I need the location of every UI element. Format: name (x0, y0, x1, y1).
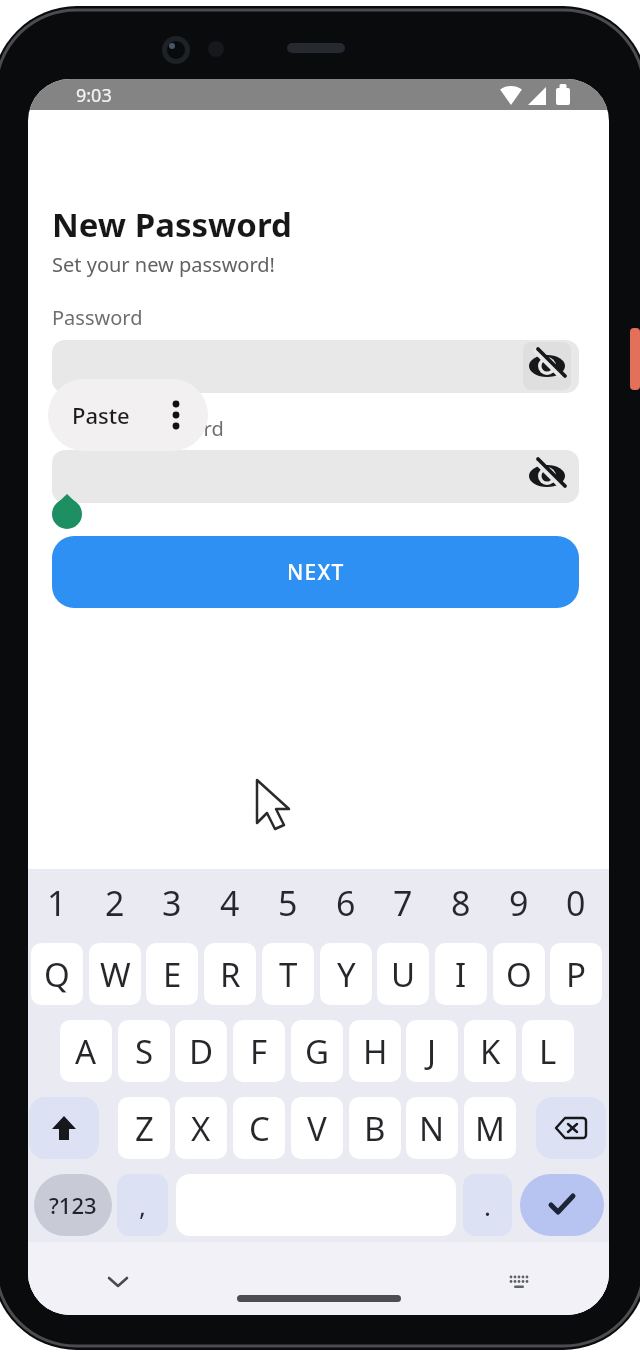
button[interactable]: A (60, 1020, 112, 1082)
staticText: ?123 (49, 1190, 97, 1220)
button[interactable]: 9 (493, 874, 545, 932)
button[interactable]: ?123 (34, 1174, 112, 1236)
button[interactable]: 4 (204, 874, 256, 932)
staticText: S (135, 1029, 154, 1074)
button[interactable] (52, 450, 579, 503)
button[interactable]: Q (31, 943, 83, 1005)
staticText: B (364, 1106, 386, 1151)
button[interactable]: T (262, 943, 314, 1005)
button[interactable]: 6 (320, 874, 372, 932)
button[interactable] (237, 1295, 401, 1302)
staticText: X (191, 1106, 211, 1151)
button[interactable] (29, 1097, 99, 1159)
button[interactable]: 0 (550, 874, 602, 932)
button[interactable]: 8 (435, 874, 487, 932)
staticText: Password (52, 304, 143, 331)
button[interactable]: 2 (89, 874, 141, 932)
button[interactable]: S (118, 1020, 170, 1082)
staticText: D (189, 1029, 214, 1074)
staticText: Y (337, 952, 356, 997)
button[interactable]: V (291, 1097, 343, 1159)
button[interactable]: J (406, 1020, 458, 1082)
button[interactable]: W (89, 943, 141, 1005)
staticText: C (249, 1106, 270, 1151)
button[interactable]: N (406, 1097, 458, 1159)
button[interactable]: H (349, 1020, 401, 1082)
button[interactable]: L (522, 1020, 574, 1082)
button[interactable] (506, 1269, 532, 1295)
staticText: H (363, 1029, 388, 1074)
staticText: O (506, 952, 532, 997)
staticText: 5 (278, 880, 298, 926)
staticText: 1 (47, 880, 67, 926)
staticText: 9 (509, 880, 529, 926)
button[interactable]: 1 (31, 874, 83, 932)
button[interactable]: , (117, 1174, 168, 1236)
button[interactable] (520, 1174, 604, 1236)
button[interactable]: K (464, 1020, 516, 1082)
button[interactable]: 3 (146, 874, 198, 932)
button[interactable]: Y (320, 943, 372, 1005)
button[interactable]: 5 (262, 874, 314, 932)
button[interactable]: O (493, 943, 545, 1005)
staticText: 4 (220, 880, 240, 926)
button[interactable]: D (175, 1020, 227, 1082)
staticText: Confirm Password (52, 415, 224, 442)
button[interactable]: B (349, 1097, 401, 1159)
staticText: P (566, 952, 586, 997)
staticText: L (539, 1029, 557, 1074)
staticText: Paste (72, 400, 130, 430)
staticText: NEXT (287, 558, 345, 587)
button[interactable] (52, 340, 579, 393)
staticText: , (139, 1188, 146, 1223)
button[interactable]: F (233, 1020, 285, 1082)
button[interactable]: M (464, 1097, 516, 1159)
button[interactable] (529, 458, 565, 494)
staticText: M (475, 1106, 505, 1151)
staticText: 8 (451, 880, 471, 926)
staticText: 2 (105, 880, 125, 926)
staticText: 3 (162, 880, 182, 926)
button[interactable]: P (550, 943, 602, 1005)
button[interactable]: U (377, 943, 429, 1005)
button[interactable]: 7 (377, 874, 429, 932)
staticText: G (305, 1029, 330, 1074)
button[interactable]: R (204, 943, 256, 1005)
button[interactable]: C (233, 1097, 285, 1159)
staticText: 7 (393, 880, 413, 926)
button[interactable]: Z (118, 1097, 170, 1159)
button[interactable] (105, 1269, 131, 1295)
staticText: 6 (336, 880, 356, 926)
staticText: A (75, 1029, 97, 1074)
staticText: Q (44, 952, 70, 997)
staticText: K (480, 1029, 501, 1074)
button[interactable]: E (146, 943, 198, 1005)
staticText: New Password (52, 202, 292, 247)
staticText: J (427, 1029, 437, 1074)
button[interactable]: NEXT (52, 536, 579, 608)
staticText: T (279, 952, 298, 997)
staticText: N (419, 1106, 445, 1151)
button[interactable]: X (175, 1097, 227, 1159)
staticText: . (484, 1188, 491, 1223)
staticText: 0 (566, 880, 586, 926)
button[interactable]: I (435, 943, 487, 1005)
button[interactable] (529, 348, 565, 384)
staticText: W (100, 952, 131, 997)
staticText: Set your new password! (52, 251, 275, 278)
button[interactable]: G (291, 1020, 343, 1082)
button[interactable]: . (463, 1174, 512, 1236)
staticText: I (455, 952, 467, 997)
staticText: E (163, 952, 182, 997)
staticText: F (250, 1029, 268, 1074)
staticText: Z (135, 1106, 154, 1151)
staticText: R (220, 952, 241, 997)
staticText: U (391, 952, 416, 997)
staticText: V (307, 1106, 327, 1151)
button[interactable]: Paste (48, 379, 208, 451)
button[interactable] (536, 1097, 606, 1159)
staticText: 9:03 (76, 83, 112, 108)
